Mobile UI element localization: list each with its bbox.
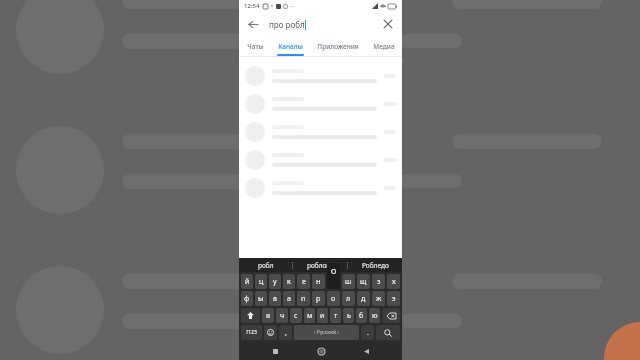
button[interactable]: ы [255, 291, 267, 306]
staticText: 12:54 [244, 2, 260, 10]
staticText: ш [345, 277, 352, 287]
button[interactable]: д [357, 291, 370, 306]
staticText: в [273, 294, 277, 304]
button[interactable] [245, 118, 396, 146]
staticText: Медиа [373, 42, 395, 51]
staticText: ж [376, 294, 382, 304]
staticText: ц [259, 277, 264, 287]
staticText: ф [244, 294, 250, 304]
button[interactable]: Медиа [365, 36, 402, 56]
staticText: робл [258, 261, 274, 270]
staticText: м [307, 311, 313, 321]
button[interactable]: в [269, 291, 281, 306]
button[interactable]: Back [245, 16, 261, 32]
button[interactable]: з [372, 274, 385, 289]
staticText: о [331, 294, 336, 304]
button[interactable]: м [304, 308, 315, 323]
staticText: ы [258, 294, 264, 304]
button[interactable]: й [241, 274, 253, 289]
button[interactable]: роблокс [293, 258, 347, 272]
button[interactable]: э [387, 291, 400, 306]
staticText: е [302, 277, 306, 287]
staticText: Робледо [362, 261, 389, 270]
button[interactable]: Recents [266, 342, 284, 360]
button[interactable]: ?123 [241, 325, 262, 340]
button[interactable]: Shift [241, 308, 260, 323]
staticText: . [367, 328, 369, 338]
button[interactable]: ь [343, 308, 354, 323]
staticText: п [301, 294, 306, 304]
button[interactable]: б [356, 308, 367, 323]
staticText: ?123 [246, 329, 257, 336]
button[interactable]: л [342, 291, 355, 306]
staticText: я [266, 311, 271, 321]
button[interactable]: Приложения [310, 36, 365, 56]
staticText: Чаты [247, 42, 264, 51]
button[interactable]: е [297, 274, 310, 289]
button[interactable]: ф [241, 291, 253, 306]
button[interactable]: о [327, 291, 340, 306]
staticText: щ [360, 277, 367, 287]
button[interactable]: с [290, 308, 302, 323]
button[interactable]: Back [357, 342, 375, 360]
button[interactable]: а [283, 291, 295, 306]
staticText: ··· [290, 2, 295, 10]
staticText: а [287, 294, 291, 304]
staticText: э [392, 294, 396, 304]
button[interactable]: Backspace [382, 308, 400, 323]
staticText: д [361, 294, 366, 304]
button[interactable]: Робледо [348, 258, 402, 272]
staticText: з [377, 277, 381, 287]
staticText: , [285, 328, 287, 338]
staticText: и [320, 311, 325, 321]
staticText: Каналы [278, 42, 303, 51]
button[interactable]: робл [239, 258, 292, 272]
button[interactable]: у [269, 274, 281, 289]
button[interactable]: р [312, 291, 325, 306]
staticText: р [316, 294, 321, 304]
button[interactable]: Emoji [264, 325, 277, 340]
button[interactable] [245, 62, 396, 90]
button[interactable]: ж [372, 291, 385, 306]
button[interactable]: Каналы [271, 36, 310, 56]
button[interactable]: ш [342, 274, 355, 289]
staticText: роблокс [307, 261, 333, 270]
button[interactable]: т [330, 308, 341, 323]
staticText: б [359, 311, 364, 321]
staticText: О [331, 267, 337, 277]
button[interactable] [245, 90, 396, 118]
staticText: т [334, 311, 338, 321]
staticText: к [287, 277, 291, 287]
button[interactable]: щ [357, 274, 370, 289]
button[interactable]: и [317, 308, 328, 323]
button[interactable]: Home [312, 342, 330, 360]
button[interactable]: ю [369, 308, 380, 323]
staticText: л [346, 294, 351, 304]
button[interactable]: . [361, 325, 374, 340]
button[interactable]: к [283, 274, 295, 289]
staticText: с [294, 311, 298, 321]
staticText: Приложения [317, 42, 359, 51]
staticText: ч [280, 311, 285, 321]
button[interactable]: Clear [380, 16, 396, 32]
button[interactable]: ‹ Русский › [294, 325, 359, 340]
button[interactable] [245, 146, 396, 174]
staticText: х [392, 277, 396, 287]
button[interactable]: я [262, 308, 274, 323]
button[interactable]: п [297, 291, 310, 306]
button[interactable] [245, 174, 396, 202]
staticText: н [316, 277, 321, 287]
staticText: про робл [269, 19, 305, 30]
button[interactable]: х [387, 274, 400, 289]
button[interactable]: н [312, 274, 325, 289]
button[interactable]: Search [376, 325, 400, 340]
staticText: ‹ Русский › [314, 329, 339, 336]
button[interactable]: ч [276, 308, 288, 323]
staticText: у [273, 277, 277, 287]
button[interactable]: ц [255, 274, 267, 289]
staticText: ь [347, 311, 351, 321]
staticText: й [245, 277, 250, 287]
button[interactable]: , [279, 325, 292, 340]
button[interactable]: Чаты [239, 36, 271, 56]
